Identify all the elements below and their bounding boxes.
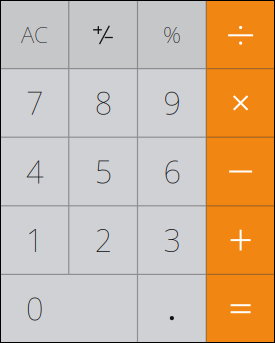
button[interactable]: 9 (137, 69, 206, 137)
button[interactable]: 8 (69, 69, 138, 137)
button[interactable]: Add (206, 206, 275, 274)
button[interactable]: 7 (0, 69, 69, 137)
staticText: 9 (163, 82, 180, 123)
button[interactable]: 5 (69, 137, 138, 206)
staticText: 1 (26, 220, 43, 260)
button[interactable]: Zero (0, 274, 137, 343)
button[interactable]: Subtract (206, 137, 275, 206)
button[interactable]: Equals (206, 274, 275, 343)
button[interactable]: 3 (137, 206, 206, 274)
button[interactable]: 2 (69, 206, 138, 274)
staticText: 6 (163, 151, 180, 192)
button[interactable]: Toggle sign (69, 0, 138, 69)
button[interactable]: 6 (137, 137, 206, 206)
staticText: 8 (95, 82, 112, 123)
button[interactable]: 1 (0, 206, 69, 274)
staticText: 2 (95, 220, 112, 260)
button[interactable]: 4 (0, 137, 69, 206)
button[interactable]: All clear (0, 0, 69, 69)
staticText: 3 (163, 220, 180, 260)
button[interactable]: Decimal point (137, 274, 206, 343)
staticText: 0 (26, 288, 43, 329)
button[interactable]: Percent (137, 0, 206, 69)
button[interactable]: Multiply (206, 69, 275, 137)
staticText: 5 (95, 151, 112, 192)
staticText: % (163, 19, 181, 49)
staticText: 7 (26, 82, 43, 123)
staticText: AC (21, 19, 48, 49)
button[interactable]: Divide (206, 0, 275, 69)
staticText: 4 (26, 151, 43, 192)
